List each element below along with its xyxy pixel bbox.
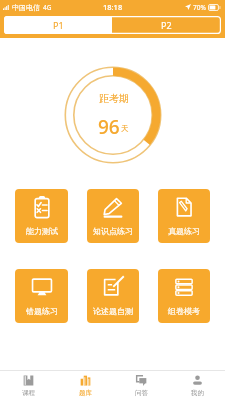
staticText: P1 [53,19,64,31]
button[interactable]: 课程 [0,371,57,400]
staticText: 天 [121,124,129,133]
staticText: 18:18 [103,2,123,12]
staticText: 组卷模考 [168,306,200,316]
button[interactable]: P1 [4,16,112,34]
staticText: 题库 [79,389,92,397]
staticText: 96 [98,114,120,140]
button[interactable]: 论述题自测 [87,269,139,323]
button[interactable]: 题库 [57,371,113,400]
staticText: 距考期 [99,92,129,105]
staticText: 能力测试 [26,226,58,236]
button[interactable]: 错题练习 [15,269,68,323]
staticText: 课程 [22,389,35,397]
button[interactable]: P2 [112,16,221,34]
button[interactable]: 真题练习 [158,189,210,243]
staticText: 问答 [135,389,148,397]
staticText: 我的 [191,389,204,397]
staticText: 知识点练习 [93,226,133,236]
staticText: 真题练习 [168,226,200,236]
button[interactable]: 知识点练习 [87,189,139,243]
button[interactable]: 能力测试 [15,189,68,243]
button[interactable]: 我的 [169,371,225,400]
staticText: 论述题自测 [93,306,133,316]
staticText: P2 [161,19,172,31]
staticText: 70% [193,3,206,12]
button[interactable]: 组卷模考 [158,269,210,323]
staticText: 错题练习 [26,306,58,316]
staticText: 中国电信 [12,3,40,12]
staticText: 4G [43,3,52,12]
button[interactable]: 问答 [113,371,169,400]
